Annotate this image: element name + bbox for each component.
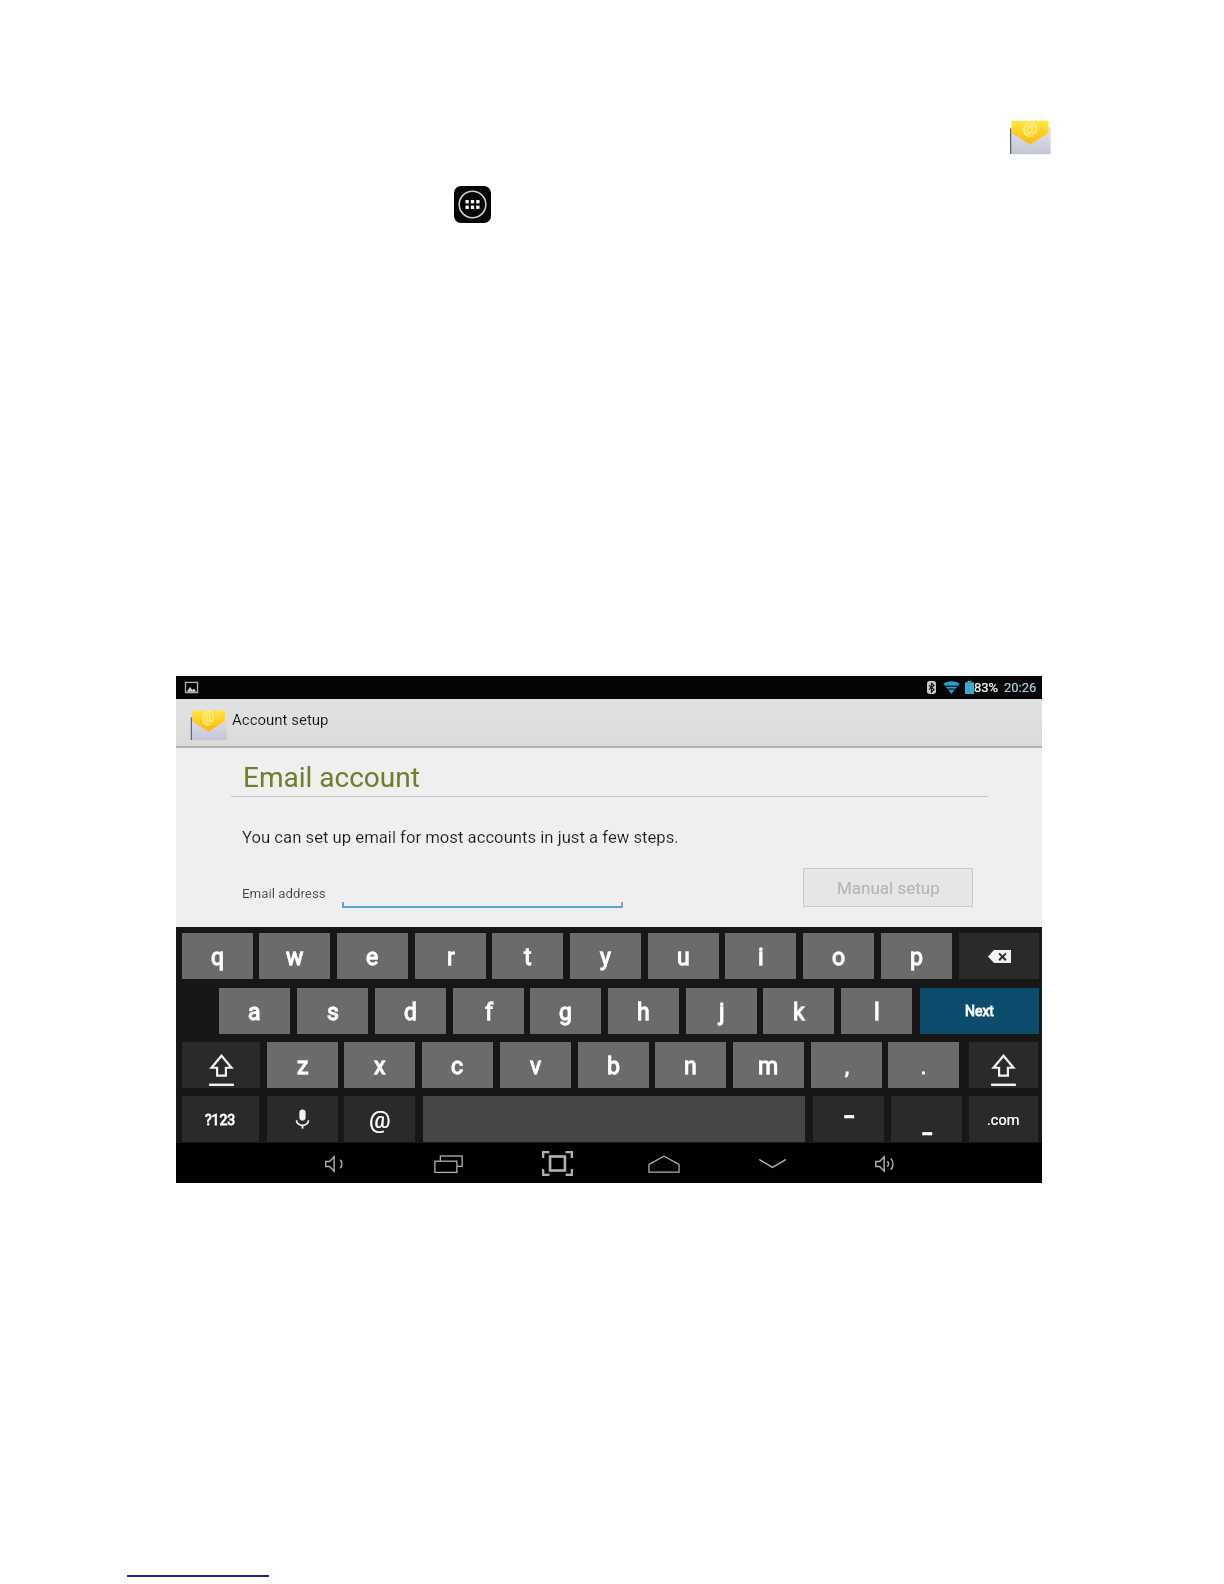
staticText: 83% bbox=[974, 680, 999, 695]
button[interactable]: k bbox=[763, 988, 834, 1034]
staticText: w bbox=[286, 944, 304, 971]
button[interactable]: Volume up bbox=[860, 1144, 908, 1183]
button[interactable]: Home bbox=[640, 1144, 688, 1183]
button[interactable]: Shift bbox=[182, 1042, 260, 1088]
button[interactable]: Email app icon bbox=[1008, 117, 1052, 155]
button[interactable]: Back bbox=[748, 1144, 796, 1183]
button[interactable]: s bbox=[297, 988, 368, 1034]
staticText: 20:26 bbox=[1004, 680, 1037, 695]
button[interactable]: Next bbox=[920, 988, 1039, 1034]
staticText: l bbox=[874, 999, 880, 1026]
staticText: e bbox=[366, 944, 379, 971]
button[interactable]: Shift bbox=[969, 1042, 1038, 1088]
staticText: @ bbox=[369, 1106, 391, 1134]
button[interactable]: q bbox=[182, 933, 253, 979]
staticText: @ bbox=[202, 709, 215, 725]
button[interactable]: u bbox=[648, 933, 719, 979]
staticText: You can set up email for most accounts i… bbox=[242, 828, 679, 848]
button[interactable]: h bbox=[608, 988, 679, 1034]
staticText: u bbox=[677, 944, 690, 971]
button[interactable]: Manual setup bbox=[803, 868, 973, 907]
staticText: c bbox=[451, 1053, 464, 1080]
staticText: v bbox=[530, 1053, 542, 1080]
button[interactable]: r bbox=[415, 933, 486, 979]
button[interactable]: c bbox=[422, 1042, 493, 1088]
button[interactable]: m bbox=[733, 1042, 804, 1088]
button[interactable]: @ bbox=[344, 1096, 415, 1142]
button[interactable]: z bbox=[267, 1042, 338, 1088]
button[interactable]: f bbox=[453, 988, 524, 1034]
button[interactable]: g bbox=[530, 988, 601, 1034]
button[interactable]: j bbox=[686, 988, 757, 1034]
staticText: h bbox=[637, 999, 650, 1026]
staticText: , bbox=[845, 1055, 849, 1078]
staticText: q bbox=[211, 944, 225, 971]
button[interactable]: Recent apps bbox=[424, 1144, 472, 1183]
button[interactable]: , bbox=[811, 1042, 882, 1088]
staticText: a bbox=[248, 999, 261, 1026]
button[interactable]: .com bbox=[969, 1096, 1038, 1142]
button[interactable]: i bbox=[725, 933, 796, 979]
staticText: g bbox=[559, 999, 572, 1026]
staticText: .com bbox=[987, 1112, 1020, 1129]
button[interactable]: w bbox=[259, 933, 330, 979]
staticText: j bbox=[719, 999, 725, 1026]
button[interactable]: x bbox=[344, 1042, 415, 1088]
button[interactable]: All apps bbox=[454, 186, 491, 223]
staticText: o bbox=[832, 944, 846, 971]
button[interactable]: p bbox=[881, 933, 952, 979]
staticText: Manual setup bbox=[837, 878, 940, 898]
staticText: n bbox=[684, 1053, 697, 1080]
button[interactable] bbox=[813, 1096, 884, 1142]
button[interactable]: t bbox=[492, 933, 563, 979]
staticText: d bbox=[404, 999, 417, 1026]
button[interactable]: Screenshot bbox=[533, 1144, 581, 1183]
staticText: . bbox=[921, 1055, 927, 1078]
staticText: @ bbox=[1023, 119, 1038, 138]
button[interactable]: ?123 bbox=[182, 1096, 259, 1142]
button[interactable] bbox=[891, 1096, 962, 1142]
staticText: Email address bbox=[242, 886, 326, 902]
button[interactable]: v bbox=[500, 1042, 571, 1088]
staticText: t bbox=[524, 944, 532, 971]
staticText: s bbox=[327, 999, 339, 1026]
button[interactable]: Delete bbox=[959, 933, 1039, 979]
button[interactable]: b bbox=[578, 1042, 649, 1088]
button[interactable]: y bbox=[570, 933, 641, 979]
staticText: r bbox=[447, 944, 455, 971]
button[interactable]: d bbox=[375, 988, 446, 1034]
staticText: b bbox=[607, 1053, 620, 1080]
staticText: Account setup bbox=[232, 711, 329, 729]
staticText: z bbox=[297, 1053, 309, 1080]
button[interactable]: l bbox=[841, 988, 912, 1034]
staticText: Email account bbox=[243, 761, 420, 794]
button[interactable]: a bbox=[219, 988, 290, 1034]
button[interactable]: n bbox=[655, 1042, 726, 1088]
staticText: x bbox=[374, 1053, 386, 1080]
button[interactable]: Volume down bbox=[310, 1144, 358, 1183]
button[interactable]: . bbox=[888, 1042, 959, 1088]
staticText: k bbox=[793, 999, 805, 1026]
staticText: Next bbox=[965, 1003, 994, 1019]
staticText: y bbox=[600, 944, 611, 971]
button[interactable]: e bbox=[337, 933, 408, 979]
staticText: f bbox=[485, 999, 493, 1026]
button[interactable]: o bbox=[803, 933, 874, 979]
button[interactable] bbox=[342, 880, 623, 908]
button[interactable]: Voice input bbox=[267, 1096, 338, 1142]
staticText: m bbox=[758, 1053, 779, 1080]
staticText: ?123 bbox=[205, 1112, 236, 1128]
staticText: p bbox=[910, 944, 923, 971]
staticText: i bbox=[758, 944, 764, 971]
